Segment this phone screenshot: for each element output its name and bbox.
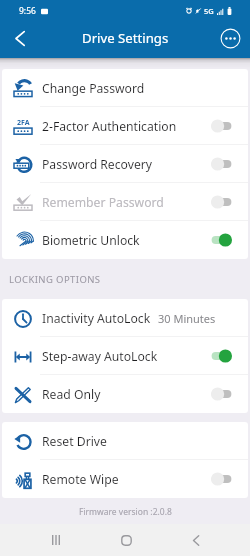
staticText: 2-Factor Authentication — [42, 118, 177, 135]
staticText: Remember Password — [42, 194, 164, 211]
staticText: 30 Minutes — [158, 311, 216, 326]
button[interactable]: Remember Password — [2, 183, 248, 221]
staticText: LOCKING OPTIONS — [9, 273, 250, 286]
staticText: Read Only — [42, 386, 101, 403]
button[interactable]: 2FA — [2, 107, 248, 145]
button[interactable]: More options — [218, 26, 242, 50]
staticText: Inactivity AutoLock — [42, 310, 151, 327]
staticText: Biometric Unlock — [42, 232, 140, 249]
button[interactable]: Inactivity AutoLock — [2, 299, 248, 337]
button[interactable]: Read Only — [2, 375, 248, 413]
button[interactable]: Step-away AutoLock — [2, 337, 248, 375]
staticText: 9:56 — [19, 5, 36, 17]
button[interactable]: Recent apps — [21, 524, 91, 556]
staticText: Firmware version :2.0.8 — [79, 506, 172, 518]
staticText: 5G — [204, 6, 214, 16]
staticText: Step-away AutoLock — [42, 348, 158, 365]
button[interactable]: Back — [161, 524, 231, 556]
button[interactable]: Remote Wipe — [2, 460, 248, 498]
staticText: Drive Settings — [82, 29, 169, 47]
staticText: 2FA — [17, 118, 30, 128]
staticText: Change Password — [42, 80, 145, 97]
button[interactable]: Biometric Unlock — [2, 221, 248, 259]
staticText: Reset Drive — [42, 433, 107, 450]
button[interactable]: Home — [91, 524, 161, 556]
staticText: Remote Wipe — [42, 471, 119, 488]
button[interactable]: Back — [8, 26, 32, 50]
button[interactable]: Password Recovery — [2, 145, 248, 183]
button[interactable]: Reset Drive — [2, 422, 248, 460]
staticText: Password Recovery — [42, 156, 153, 173]
button[interactable]: Change Password — [2, 69, 248, 107]
